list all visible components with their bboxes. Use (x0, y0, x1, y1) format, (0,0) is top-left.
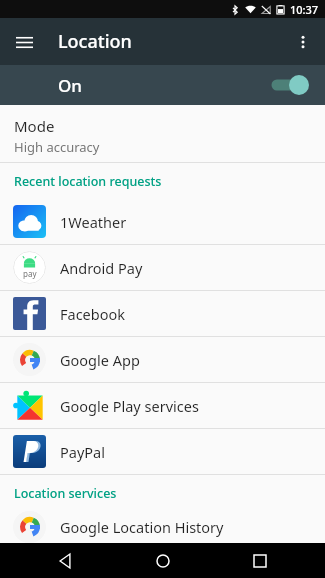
button[interactable]: Back (48, 544, 82, 578)
staticText: Recent location requests (14, 173, 162, 190)
button[interactable]: Google App (0, 337, 325, 382)
staticText: pay (23, 268, 37, 279)
staticText: Android Pay (60, 258, 143, 278)
staticText: Google Location History (60, 517, 224, 537)
staticText: 1Weather (60, 212, 127, 232)
staticText: Location services (14, 485, 117, 502)
staticText: Facebook (60, 304, 126, 324)
staticText: Google App (60, 350, 140, 370)
staticText: High accuracy (14, 138, 100, 156)
button[interactable]: PayPal (0, 429, 325, 474)
button[interactable]: 1Weather (0, 199, 325, 244)
button[interactable]: More options (285, 24, 321, 60)
button[interactable]: Google Location History (0, 511, 325, 543)
staticText: Location (58, 29, 132, 54)
staticText: Google Play services (60, 396, 199, 416)
button[interactable]: Home (146, 544, 180, 578)
button[interactable]: Mode (0, 105, 325, 162)
button[interactable]: pay (0, 245, 325, 290)
staticText: PayPal (60, 442, 105, 462)
staticText: On (58, 74, 82, 97)
staticText: Mode (14, 116, 55, 136)
button[interactable]: Navigation menu (6, 24, 42, 60)
button[interactable]: Facebook (0, 291, 325, 336)
button[interactable]: Recent apps (243, 544, 277, 578)
staticText: 10:37 (290, 2, 319, 17)
button[interactable]: Google Play services (0, 383, 325, 428)
button[interactable]: On (0, 65, 325, 105)
